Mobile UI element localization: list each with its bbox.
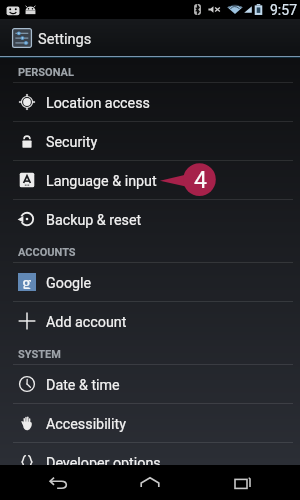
button[interactable]: Security (0, 122, 300, 160)
staticText: Settings (38, 30, 92, 47)
staticText: ACCOUNTS (18, 246, 76, 259)
staticText: Security (46, 134, 98, 151)
staticText: Add account (46, 314, 127, 331)
staticText: Google (46, 275, 92, 292)
staticText: Backup & reset (46, 212, 142, 229)
button[interactable]: Language & input (0, 161, 300, 199)
staticText: SYSTEM (18, 348, 61, 361)
button[interactable]: Location access (0, 83, 300, 121)
button[interactable]: Accessibility (0, 404, 300, 442)
staticText: Language & input (46, 173, 157, 190)
staticText: Location access (46, 95, 150, 112)
button[interactable]: Date & time (0, 365, 300, 403)
staticText: PERSONAL (18, 66, 74, 79)
staticText: Developer options (46, 455, 161, 465)
button[interactable]: Recent apps (208, 465, 278, 500)
button[interactable]: Add account (0, 302, 300, 340)
button[interactable]: Settings (0, 19, 300, 56)
button[interactable]: Backup & reset (0, 200, 300, 238)
staticText: Accessibility (46, 416, 127, 433)
staticText: g (22, 271, 32, 289)
staticText: 9:57 (270, 2, 297, 18)
button[interactable]: Home (115, 465, 185, 500)
button[interactable]: Developer options (0, 443, 300, 465)
button[interactable]: g (0, 263, 300, 301)
button[interactable]: Back (23, 465, 93, 500)
staticText: 4 (194, 167, 207, 194)
staticText: Date & time (46, 377, 120, 394)
